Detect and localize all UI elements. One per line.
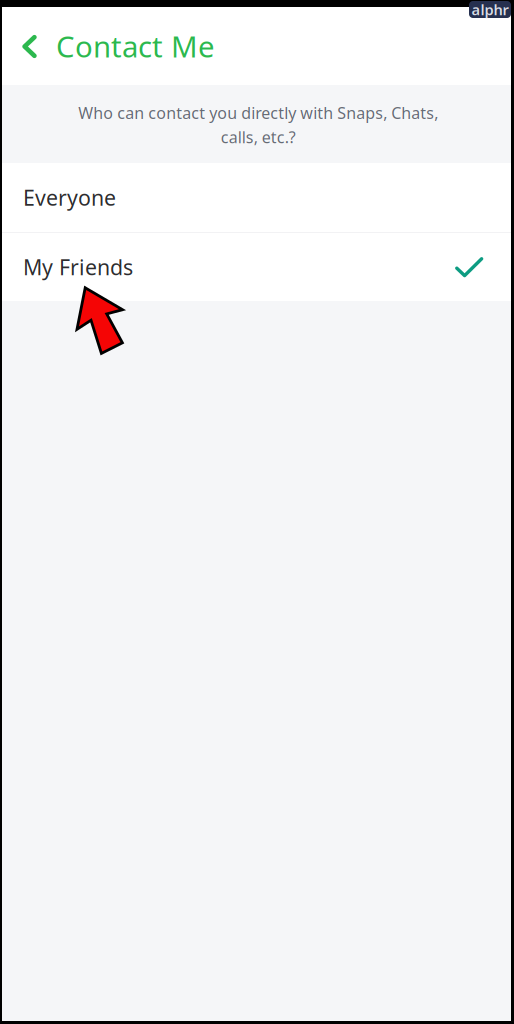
button[interactable]: Everyone	[2, 163, 511, 232]
staticText: Everyone	[23, 183, 116, 212]
staticText: alphr	[471, 0, 508, 19]
button[interactable]: Back to Contact Me	[2, 7, 229, 85]
button[interactable]: My Friends	[2, 233, 511, 301]
staticText: Contact Me	[56, 26, 215, 65]
staticText: Who can contact you directly with Snaps,…	[78, 102, 438, 148]
staticText: My Friends	[23, 253, 133, 281]
